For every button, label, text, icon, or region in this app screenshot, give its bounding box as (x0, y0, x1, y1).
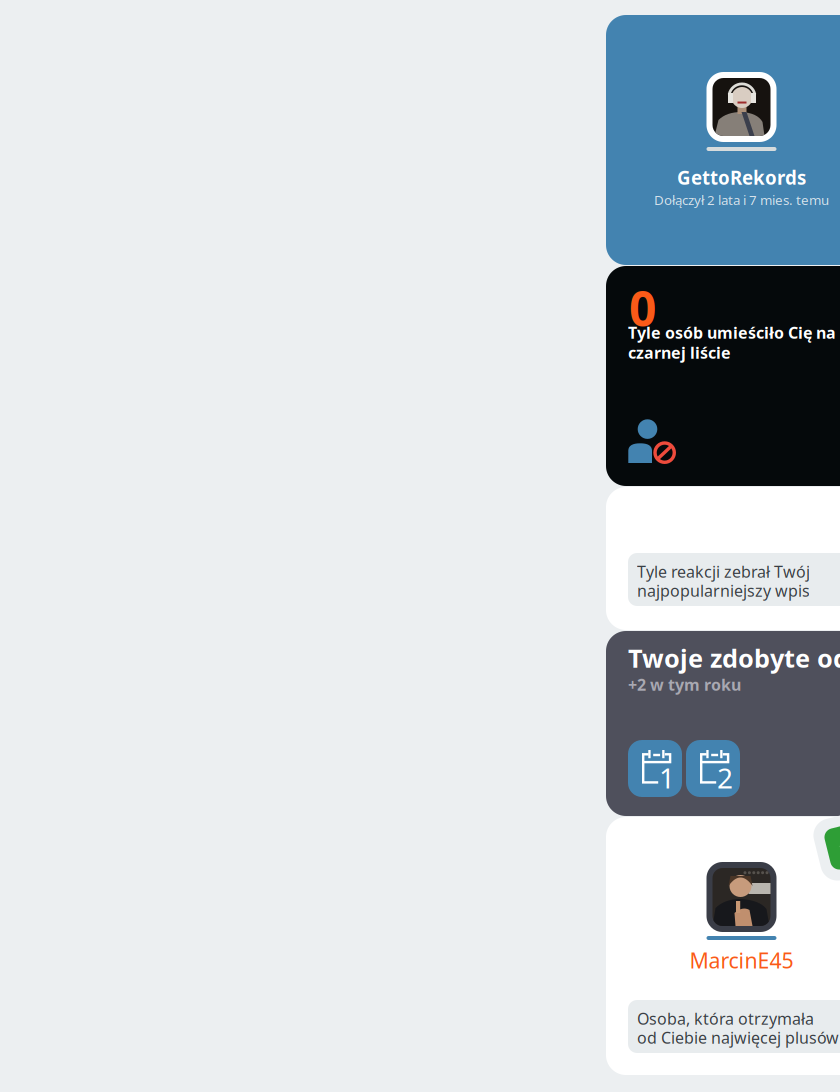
staticText: czarnej liście (628, 342, 731, 363)
button[interactable]: MarcinE45 — osoba, która otrzymała od Ci… (606, 817, 840, 1075)
staticText: Osoba, która otrzymała (637, 1008, 814, 1029)
button[interactable]: 0 osób umieściło Cię na czarnej liście (606, 266, 840, 486)
staticText: +2 w tym roku (628, 674, 741, 695)
button[interactable]: GettoRekords, dołączył 2 lata i 7 miesię… (606, 15, 840, 265)
staticText: MarcinE45 (689, 946, 793, 974)
staticText: Tyle osób umieściło Cię na (628, 322, 836, 343)
staticText: GettoRekords (677, 165, 806, 190)
staticText: Twoje zdobyte odznaki (628, 641, 840, 675)
button[interactable]: Tyle reakcji zebrał Twój najpopularniejs… (606, 487, 840, 630)
staticText: 2 (717, 759, 733, 796)
button[interactable]: Twoje zdobyte odznaki, +2 w tym roku (606, 631, 840, 816)
staticText: Tyle reakcji zebrał Twój (637, 561, 810, 582)
staticText: 1 (659, 759, 675, 796)
staticText: od Ciebie najwięcej plusów (637, 1027, 839, 1048)
staticText: 0 (629, 276, 656, 340)
staticText: najpopularniejszy wpis (637, 580, 810, 601)
staticText: Dołączył 2 lata i 7 mies. temu (654, 191, 829, 209)
